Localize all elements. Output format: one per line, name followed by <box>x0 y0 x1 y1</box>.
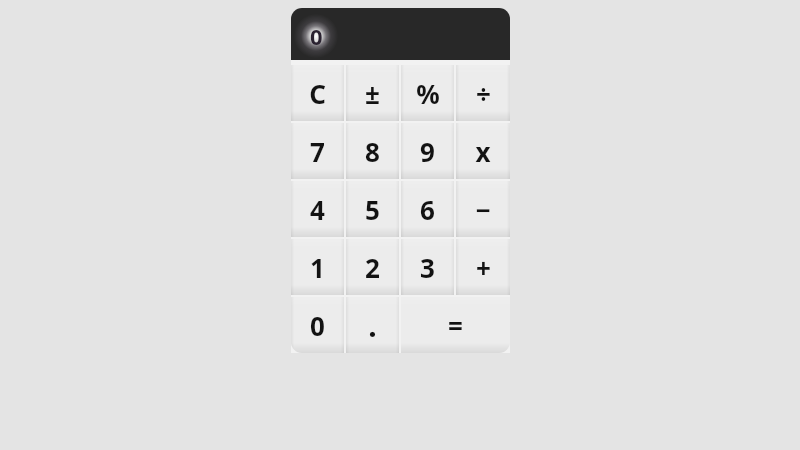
staticText: 6 <box>420 192 435 227</box>
staticText: = <box>448 308 463 343</box>
button[interactable]: + <box>456 239 510 295</box>
staticText: ± <box>365 76 380 111</box>
staticText: 1 <box>310 250 325 285</box>
button[interactable]: ± <box>346 65 399 121</box>
button[interactable]: − <box>456 181 510 237</box>
staticText: 2 <box>365 250 380 285</box>
button[interactable]: 8 <box>346 123 399 179</box>
button[interactable]: 5 <box>346 181 399 237</box>
button[interactable]: 3 <box>401 239 454 295</box>
button[interactable]: 2 <box>346 239 399 295</box>
button[interactable]: 4 <box>291 181 344 237</box>
staticText: ÷ <box>476 76 491 111</box>
button[interactable]: 6 <box>401 181 454 237</box>
staticText: x <box>475 134 491 169</box>
button[interactable]: % <box>401 65 454 121</box>
staticText: 3 <box>420 250 435 285</box>
button[interactable]: C <box>291 65 344 121</box>
button[interactable]: ÷ <box>456 65 510 121</box>
staticText: % <box>416 76 440 111</box>
staticText: + <box>476 250 491 285</box>
staticText: C <box>309 76 326 111</box>
staticText: 0 <box>310 308 325 343</box>
staticText: 4 <box>310 192 325 227</box>
button[interactable]: 7 <box>291 123 344 179</box>
staticText: − <box>475 192 491 227</box>
staticText: . <box>368 305 377 346</box>
button[interactable]: Equals <box>401 297 510 353</box>
staticText: 0 <box>310 21 323 51</box>
staticText: 5 <box>365 192 380 227</box>
button[interactable]: 9 <box>401 123 454 179</box>
staticText: 7 <box>310 134 325 169</box>
staticText: 8 <box>365 134 380 169</box>
button[interactable]: . <box>346 297 399 353</box>
button[interactable]: 1 <box>291 239 344 295</box>
button[interactable]: 0 <box>291 297 344 353</box>
button[interactable]: x <box>456 123 510 179</box>
staticText: 9 <box>420 134 435 169</box>
